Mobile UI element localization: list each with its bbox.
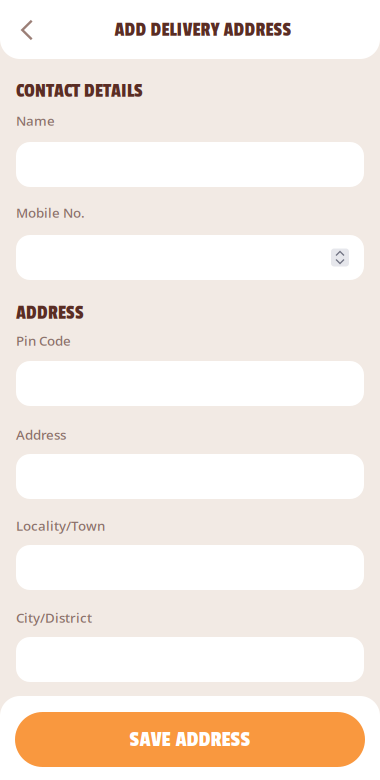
staticText: Name [16,112,55,129]
staticText: SAVE ADDRESS [129,727,250,752]
staticText: Pin Code [16,332,71,349]
staticText: CONTACT DETAILS [16,80,143,102]
staticText: ADD DELIVERY ADDRESS [114,19,291,41]
staticText: Mobile No. [16,204,85,221]
staticText: Address [16,426,66,443]
staticText: City/District [16,609,92,626]
button[interactable]: Back [5,8,49,52]
staticText: ADDRESS [16,302,84,324]
staticText: Locality/Town [16,517,105,534]
button[interactable]: SAVE ADDRESS [0,712,380,767]
